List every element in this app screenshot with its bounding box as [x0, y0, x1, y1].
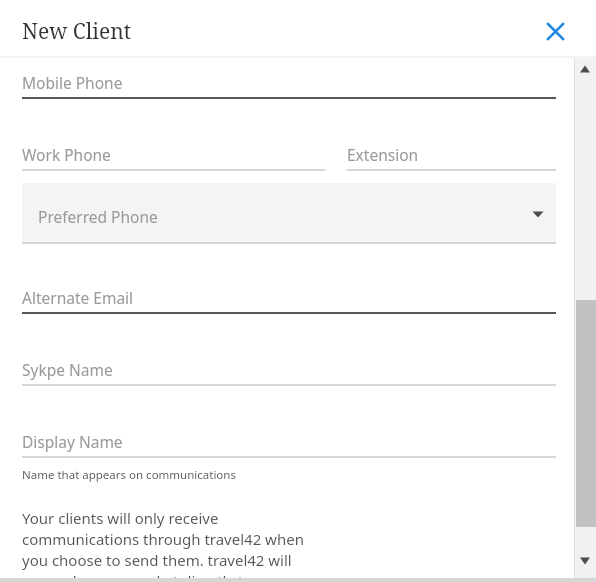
staticText: Alternate Email [22, 287, 134, 308]
button[interactable]: Extension [347, 140, 556, 176]
staticText: Mobile Phone [22, 72, 123, 93]
staticText: Name that appears on communications [22, 467, 236, 483]
staticText: Your clients will only receive communica… [22, 508, 314, 582]
button[interactable]: Preferred Phone [22, 183, 556, 244]
staticText: Work Phone [22, 144, 111, 165]
staticText: Extension [347, 144, 419, 165]
button[interactable]: Display Name [22, 427, 556, 463]
staticText: New Client [22, 17, 132, 46]
staticText: Preferred Phone [38, 206, 158, 227]
button[interactable]: Sykpe Name [22, 355, 556, 391]
button[interactable]: Work Phone [22, 140, 325, 176]
staticText: Sykpe Name [22, 359, 113, 380]
button[interactable]: Mobile Phone [22, 68, 556, 104]
button[interactable]: Close [538, 14, 572, 48]
staticText: Display Name [22, 431, 123, 452]
button[interactable]: Alternate Email [22, 283, 556, 319]
